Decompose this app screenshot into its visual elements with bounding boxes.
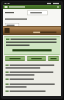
- button[interactable]: App bar: [3, 5, 61, 9]
- button[interactable]: [3, 77, 61, 82]
- button[interactable]: [3, 89, 61, 94]
- button[interactable]: [4, 36, 60, 55]
- button[interactable]: Share: [27, 56, 46, 61]
- button[interactable]: Chapter banner: [3, 26, 61, 35]
- button[interactable]: [3, 70, 61, 77]
- button[interactable]: [3, 82, 61, 89]
- button[interactable]: [3, 63, 61, 70]
- button[interactable]: More: [48, 56, 59, 61]
- button[interactable]: Play: [5, 56, 25, 61]
